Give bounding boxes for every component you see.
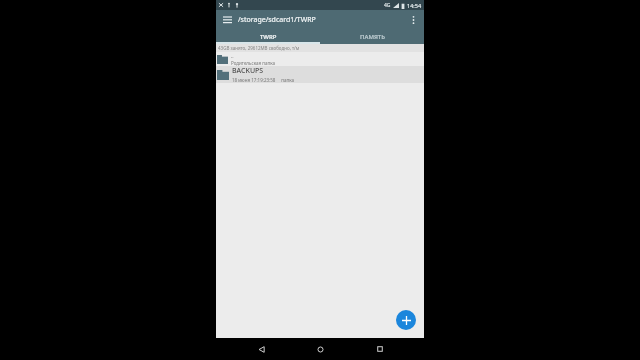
button[interactable]: BACKUPS xyxy=(216,66,424,83)
button[interactable]: TWRP xyxy=(216,30,320,44)
button[interactable]: Recent apps xyxy=(365,338,395,360)
staticText: /storage/sdcard1/TWRP xyxy=(238,15,316,25)
staticText: TWRP xyxy=(260,33,277,41)
staticText: Родительская папка xyxy=(231,60,275,66)
button[interactable]: More options xyxy=(406,13,420,27)
staticText: 14:54 xyxy=(407,2,422,9)
staticText: 18 июня 17:19:23:58 папка xyxy=(232,77,295,83)
staticText: BACKUPS xyxy=(232,66,264,76)
staticText: 4G xyxy=(384,2,391,9)
staticText: 43GB занято, 29612MB свободно, т/м xyxy=(218,45,300,51)
button[interactable]: Back xyxy=(246,338,276,360)
button[interactable]: Home xyxy=(305,338,335,360)
staticText: ПАМЯТЬ xyxy=(360,33,385,41)
button[interactable]: ПАМЯТЬ xyxy=(320,30,424,44)
staticText: .. xyxy=(231,53,234,60)
button[interactable]: .. xyxy=(216,52,424,66)
button[interactable]: Add xyxy=(396,310,416,330)
button[interactable]: Open navigation menu xyxy=(220,13,234,27)
